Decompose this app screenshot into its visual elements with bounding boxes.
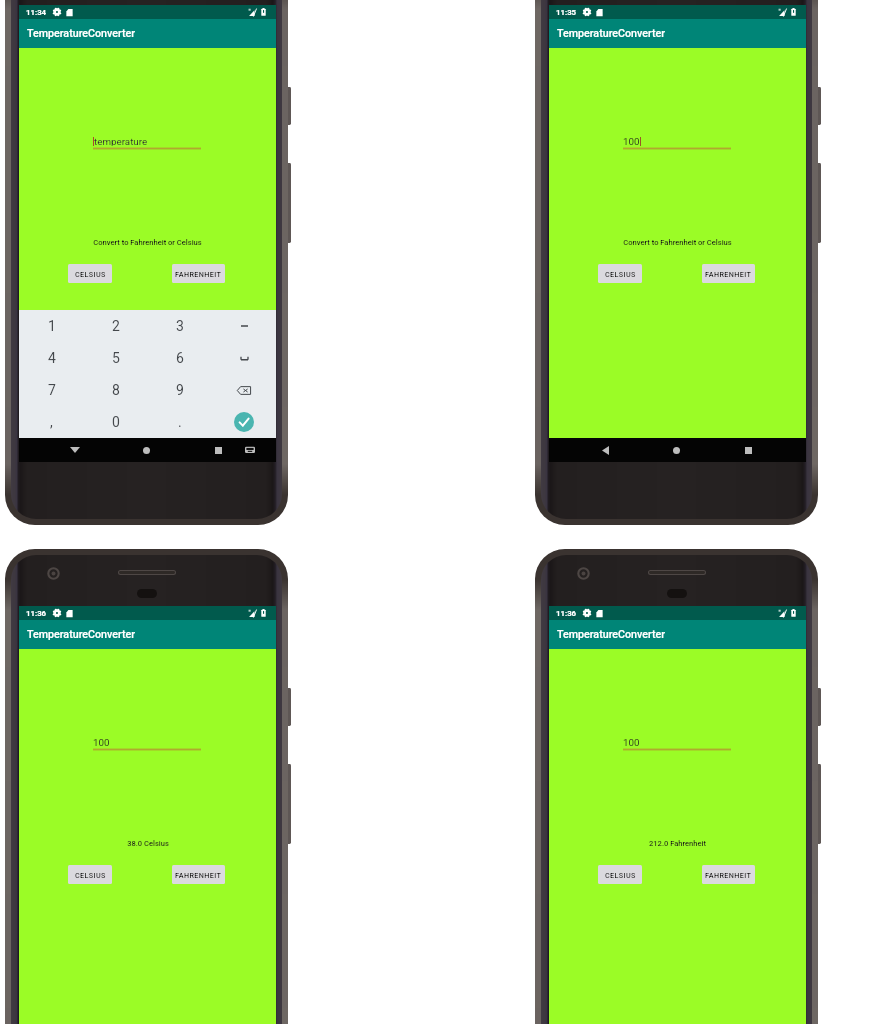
button[interactable]: 6	[148, 342, 212, 374]
button[interactable]: TemperatureConverter	[549, 620, 806, 649]
button[interactable]: 4	[19, 342, 84, 374]
button[interactable]: FAHRENHEIT	[702, 865, 755, 884]
staticText: TemperatureConverter	[557, 628, 666, 641]
staticText: 100	[93, 737, 110, 747]
button[interactable]: space	[212, 342, 276, 374]
button[interactable]: 100	[93, 737, 201, 747]
staticText: 100	[623, 136, 640, 146]
staticText: 3	[176, 318, 184, 334]
button[interactable]: 1	[19, 310, 84, 342]
button[interactable]: ok	[212, 406, 276, 438]
button[interactable]: .	[148, 406, 212, 438]
staticText: FAHRENHEIT	[175, 871, 222, 879]
button[interactable]: TemperatureConverter	[549, 19, 806, 48]
staticText: .	[178, 414, 182, 430]
button[interactable]: 2	[84, 310, 148, 342]
staticText: Convert to Fahrenheit or Celsius	[93, 238, 202, 247]
button[interactable]: FAHRENHEIT	[702, 264, 755, 283]
staticText: FAHRENHEIT	[175, 270, 222, 278]
staticText: 1	[48, 318, 56, 334]
button[interactable]: 8	[84, 374, 148, 406]
button[interactable]: Home	[120, 438, 172, 462]
staticText: ,	[50, 414, 53, 430]
button[interactable]: Back	[577, 438, 633, 462]
staticText: 5	[112, 350, 120, 366]
button[interactable]: 9	[148, 374, 212, 406]
staticText: 4	[48, 350, 56, 366]
staticText: FAHRENHEIT	[705, 871, 752, 879]
button[interactable]: minus	[212, 310, 276, 342]
button[interactable]: 0	[84, 406, 148, 438]
button[interactable]: CELSIUS	[598, 264, 642, 283]
staticText: 0	[112, 414, 120, 430]
staticText: 8	[112, 382, 120, 398]
staticText: FAHRENHEIT	[705, 270, 752, 278]
staticText: CELSIUS	[605, 871, 636, 879]
staticText: TemperatureConverter	[27, 27, 136, 40]
staticText: 11:34	[26, 8, 47, 17]
staticText: CELSIUS	[75, 871, 106, 879]
staticText: TemperatureConverter	[557, 27, 666, 40]
button[interactable]: CELSIUS	[68, 865, 112, 884]
staticText: 7	[48, 382, 56, 398]
button[interactable]: Recents	[720, 438, 776, 462]
button[interactable]: 100	[623, 136, 731, 146]
other: Done	[234, 412, 254, 432]
button[interactable]: CELSIUS	[68, 264, 112, 283]
button[interactable]: FAHRENHEIT	[172, 264, 225, 283]
button[interactable]: ,	[19, 406, 84, 438]
staticText: 11:36	[556, 609, 577, 618]
staticText: Convert to Fahrenheit or Celsius	[623, 238, 732, 247]
staticText: 100	[623, 737, 640, 747]
staticText: CELSIUS	[75, 270, 106, 278]
staticText: temperature	[94, 136, 148, 146]
button[interactable]: Home	[648, 438, 704, 462]
staticText: 11:36	[26, 609, 47, 618]
button[interactable]: 100	[623, 737, 731, 747]
button[interactable]: 5	[84, 342, 148, 374]
button[interactable]: Hide keyboard	[49, 438, 101, 462]
staticText: 9	[176, 382, 184, 398]
button[interactable]: 3	[148, 310, 212, 342]
button[interactable]: CELSIUS	[598, 865, 642, 884]
button[interactable]: Recents	[196, 438, 240, 462]
button[interactable]: FAHRENHEIT	[172, 865, 225, 884]
staticText: 38.0 Celsius	[127, 839, 169, 848]
staticText: TemperatureConverter	[27, 628, 136, 641]
staticText: 2	[112, 318, 120, 334]
button[interactable]: TemperatureConverter	[19, 19, 276, 48]
staticText: 212.0 Fahrenheit	[649, 839, 706, 848]
button[interactable]: Switch input method	[237, 438, 263, 462]
button[interactable]: del	[212, 374, 276, 406]
staticText: 6	[176, 350, 184, 366]
staticText: 11:35	[556, 8, 577, 17]
staticText: CELSIUS	[605, 270, 636, 278]
button[interactable]: TemperatureConverter	[19, 620, 276, 649]
button[interactable]: 7	[19, 374, 84, 406]
button[interactable]: temperature	[93, 136, 201, 146]
